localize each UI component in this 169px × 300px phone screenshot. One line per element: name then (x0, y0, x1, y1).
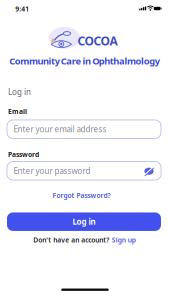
staticText: Sign up (112, 236, 136, 244)
staticText: COCOA (77, 33, 117, 49)
staticText: Community Care in Ophthalmology (9, 55, 160, 67)
staticText: 9:41 (15, 4, 29, 13)
staticText: Log in (8, 87, 31, 97)
button[interactable]: Show password (143, 166, 155, 176)
button[interactable]: Log in (7, 212, 161, 231)
button[interactable]: Sign up (112, 236, 136, 244)
staticText: Email (8, 107, 27, 116)
button[interactable]: Forgot Password? (52, 191, 110, 200)
staticText: Enter your password (13, 165, 90, 176)
staticText: Password (8, 150, 39, 159)
button[interactable]: Enter your password (7, 162, 161, 180)
staticText: Enter your email address (13, 124, 106, 134)
staticText: Forgot Password? (52, 191, 110, 200)
staticText: Log in (72, 216, 95, 227)
button[interactable]: Enter your email address (7, 120, 161, 138)
staticText: Don't have an account? (33, 236, 109, 244)
